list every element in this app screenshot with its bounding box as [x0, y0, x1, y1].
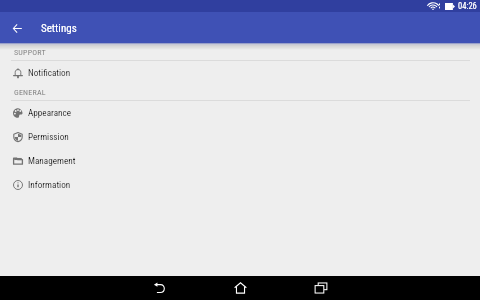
button[interactable]: Navigate up: [0, 14, 35, 43]
button[interactable]: Management: [0, 149, 480, 173]
staticText: SUPPORT: [14, 48, 46, 57]
button[interactable]: Permission: [0, 125, 480, 149]
button[interactable]: Recent apps: [314, 281, 328, 295]
staticText: 04:26: [458, 1, 477, 11]
staticText: Permission: [28, 131, 69, 142]
staticText: Management: [28, 155, 76, 166]
staticText: Notification: [28, 67, 71, 78]
button[interactable]: Information: [0, 173, 480, 197]
staticText: Appearance: [28, 107, 72, 118]
staticText: Information: [28, 179, 71, 190]
button[interactable]: Back: [152, 281, 166, 295]
button[interactable]: Appearance: [0, 101, 480, 125]
button[interactable]: Notification: [0, 61, 480, 85]
staticText: Settings: [41, 22, 77, 35]
button[interactable]: Home: [233, 281, 247, 295]
staticText: GENERAL: [14, 88, 46, 97]
